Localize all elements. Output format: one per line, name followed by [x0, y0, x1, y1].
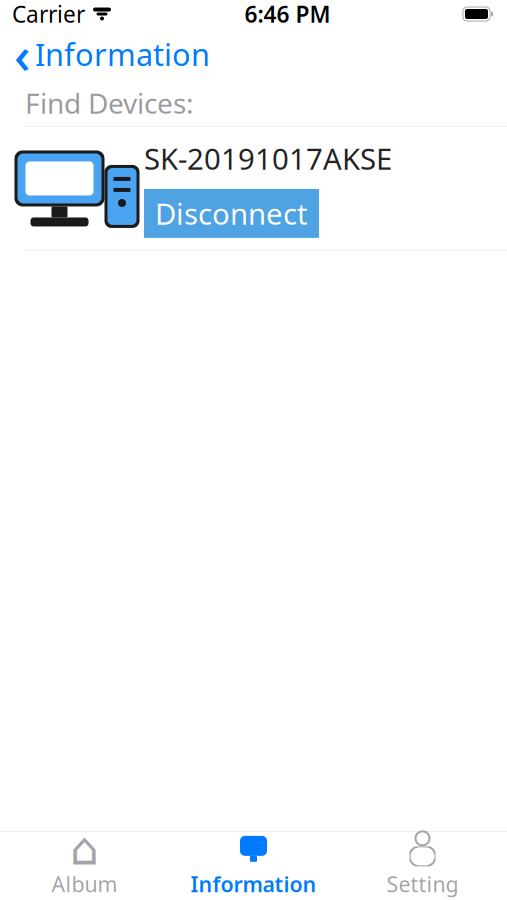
staticText: Information: [190, 870, 316, 898]
staticText: Find Devices:: [25, 84, 194, 122]
button[interactable]: Disconnect: [144, 189, 319, 238]
staticText: Album: [51, 870, 117, 898]
staticText: Disconnect: [155, 194, 308, 233]
button[interactable]: ⌂: [0, 826, 169, 900]
button[interactable]: Information: [169, 826, 338, 900]
staticText: Carrier: [12, 0, 85, 29]
staticText: 6:46 PM: [244, 0, 330, 29]
staticText: ‹: [14, 20, 31, 88]
button[interactable]: ‹: [0, 20, 220, 88]
staticText: SK-20191017AKSE: [144, 139, 392, 178]
staticText: ⌂: [70, 823, 99, 875]
staticText: Information: [35, 34, 210, 74]
staticText: Setting: [386, 870, 458, 898]
button[interactable]: Setting: [338, 826, 507, 900]
